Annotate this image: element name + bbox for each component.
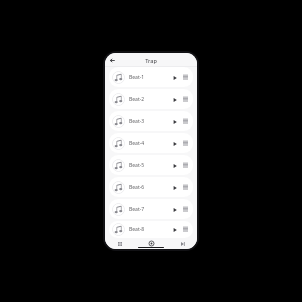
staticText: Beat-4 — [129, 140, 145, 147]
staticText: Beat-1 — [129, 74, 145, 81]
staticText: Beat-6 — [129, 184, 145, 191]
button[interactable]: Beat-2 — [109, 89, 193, 109]
staticText: Beat-5 — [129, 162, 145, 169]
staticText: Beat-8 — [129, 226, 145, 233]
button[interactable]: Next — [178, 239, 187, 248]
button[interactable]: Beat-6 — [109, 177, 193, 197]
button[interactable]: Options for Beat-5 — [181, 161, 190, 170]
button[interactable]: Options for Beat-3 — [181, 117, 190, 126]
button[interactable]: Beat-1 — [109, 67, 193, 87]
button[interactable]: Play Beat-6 — [170, 183, 179, 192]
staticText: Trap — [145, 57, 157, 64]
button[interactable]: Library — [115, 239, 124, 248]
button[interactable]: Options for Beat-8 — [181, 225, 190, 234]
button[interactable]: Beat-5 — [109, 155, 193, 175]
staticText: Beat-7 — [129, 206, 145, 213]
button[interactable]: Options for Beat-7 — [181, 205, 190, 214]
button[interactable]: Home — [147, 239, 156, 248]
button[interactable]: Options for Beat-1 — [181, 73, 190, 82]
staticText: Beat-3 — [129, 118, 145, 125]
button[interactable]: Options for Beat-6 — [181, 183, 190, 192]
button[interactable]: Play Beat-2 — [170, 95, 179, 104]
button[interactable]: Play Beat-8 — [170, 225, 179, 234]
button[interactable]: Play Beat-7 — [170, 205, 179, 214]
button[interactable]: Beat-3 — [109, 111, 193, 131]
staticText: Beat-2 — [129, 96, 145, 103]
button[interactable]: Beat-8 — [109, 221, 193, 238]
button[interactable]: Play Beat-1 — [170, 73, 179, 82]
button[interactable]: Beat-4 — [109, 133, 193, 153]
button[interactable]: Beat-7 — [109, 199, 193, 219]
button[interactable]: Play Beat-5 — [170, 161, 179, 170]
button[interactable]: Play Beat-3 — [170, 117, 179, 126]
button[interactable]: Options for Beat-4 — [181, 139, 190, 148]
button[interactable]: Options for Beat-2 — [181, 95, 190, 104]
button[interactable]: Back — [107, 55, 117, 65]
button[interactable]: Play Beat-4 — [170, 139, 179, 148]
